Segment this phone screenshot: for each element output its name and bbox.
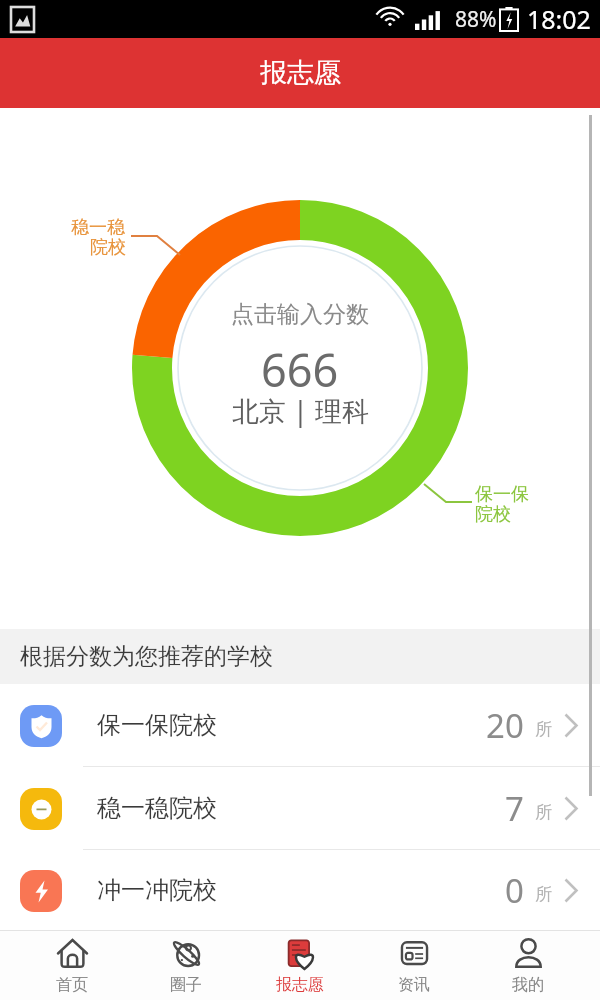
staticText: 保一保: [475, 483, 529, 506]
staticText: 7: [505, 786, 524, 831]
staticText: 88%: [455, 5, 497, 34]
staticText: 根据分数为您推荐的学校: [20, 642, 273, 671]
button[interactable]: 报志愿: [243, 931, 357, 1000]
staticText: 20: [486, 703, 524, 748]
staticText: 首页: [56, 975, 88, 995]
staticText: 稳一稳院校: [97, 793, 217, 823]
staticText: 我的: [512, 975, 544, 995]
staticText: 保一保院校: [97, 710, 217, 740]
button[interactable]: 我的: [471, 931, 585, 1000]
staticText: 院校: [90, 236, 126, 259]
button[interactable]: 首页: [15, 931, 129, 1000]
staticText: 北京 | 理科: [232, 392, 369, 429]
staticText: 院校: [475, 503, 511, 526]
button[interactable]: 冲一冲院校: [0, 850, 600, 930]
staticText: 报志愿: [260, 56, 341, 90]
button[interactable]: 保一保院校: [0, 684, 600, 766]
staticText: 资讯: [398, 975, 430, 995]
staticText: 圈子: [170, 975, 202, 995]
staticText: 18:02: [527, 2, 591, 36]
staticText: 报志愿: [276, 975, 324, 995]
staticText: 稳一稳: [71, 216, 125, 239]
staticText: 666: [261, 339, 339, 400]
staticText: 所: [535, 719, 552, 740]
staticText: 所: [535, 802, 552, 823]
button[interactable]: 圈子: [129, 931, 243, 1000]
staticText: 冲一冲院校: [97, 875, 217, 905]
button[interactable]: 资讯: [357, 931, 471, 1000]
button[interactable]: 稳一稳院校: [0, 767, 600, 849]
staticText: 点击输入分数: [231, 300, 369, 329]
staticText: 0: [505, 868, 524, 913]
staticText: 所: [535, 884, 552, 905]
